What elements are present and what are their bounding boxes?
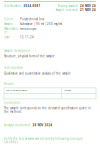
staticText: 28 NOV 2024 [32,123,52,127]
staticText: Date [4,35,10,39]
staticText: Polytechnical Inst. [20,17,45,21]
staticText: Conclusion: [4,101,21,104]
staticText: 24 NOV 24 [80,4,96,8]
staticText: 2024-0087 [23,4,40,8]
staticText: Sample description: [4,49,31,52]
staticText: Client [4,17,13,21]
staticText: Sample received: [55,8,78,12]
staticText: The sample corresponds to the declared s… [4,106,91,113]
staticText: Qualitative and quantitative analysis of… [4,72,71,75]
staticText: Substance | 95 ml | 250 mg/ml [20,22,62,26]
staticText: Test Number: [4,4,22,8]
staticText: Sample [4,22,13,26]
staticText: Result: [4,82,14,86]
staticText: 10-30 mg/ml [63,90,70,91]
staticText: Analysis conducted: [4,123,31,127]
staticText: Mitra Biocyte [20,27,37,30]
staticText: Total concentration of constituents [5,90,27,91]
staticText: Structure, physical form of the sample [4,54,55,58]
staticText: Test objective: [4,66,24,69]
staticText: 12.11.24 [20,35,34,39]
staticText: Testing started: [57,4,78,8]
staticText: 21 NOV 24 [80,8,96,12]
staticText: Verify the test at www.acredit.com by fo… [4,137,83,144]
staticText: Manufacturer [4,27,19,34]
